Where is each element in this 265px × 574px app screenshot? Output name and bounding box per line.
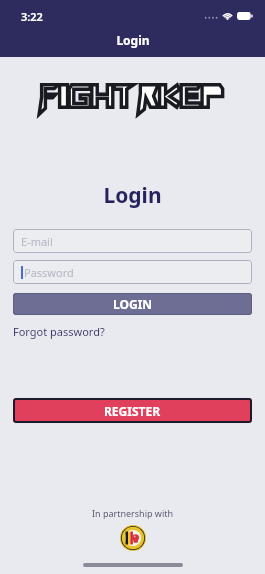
staticText: Password [24, 265, 74, 280]
staticText: E-mail [21, 234, 53, 249]
staticText: Login [116, 32, 150, 48]
staticText: 3:22 [21, 9, 43, 24]
staticText: LOGIN [113, 296, 153, 312]
button[interactable]: REGISTER [13, 398, 252, 423]
staticText: Login [0, 181, 265, 210]
button[interactable]: Password [13, 260, 252, 284]
staticText: REGISTER [104, 403, 161, 419]
button[interactable]: Forgot password? [13, 323, 105, 340]
button[interactable]: E-mail [13, 229, 252, 253]
other: Partner federation logo [120, 525, 146, 551]
staticText: In partnership with [0, 507, 265, 519]
button[interactable]: LOGIN [13, 293, 252, 315]
